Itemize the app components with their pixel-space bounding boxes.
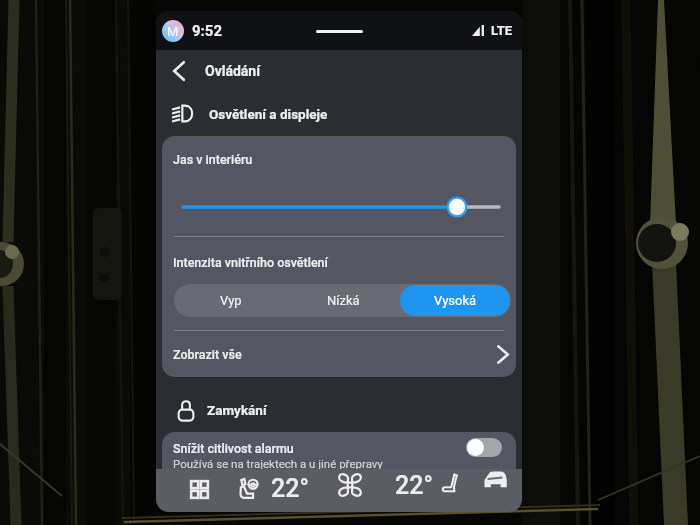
staticText: Jas v interiéru xyxy=(173,152,253,167)
other: Back xyxy=(173,61,185,81)
staticText: 9:52 xyxy=(192,22,223,40)
button[interactable]: Apps xyxy=(182,473,216,507)
staticText: M xyxy=(167,24,179,39)
staticText: 22° xyxy=(271,474,309,503)
staticText: Vyp xyxy=(220,293,242,308)
staticText: Nízká xyxy=(327,293,360,308)
staticText: Osvětlení a displeje xyxy=(209,106,328,122)
button[interactable]: Driver seat heating xyxy=(231,471,265,505)
button[interactable]: Nízká xyxy=(287,284,399,317)
staticText: Snížit citlivost alarmu xyxy=(173,441,294,456)
button[interactable]: Car status xyxy=(478,463,512,497)
staticText: Ovládání xyxy=(205,63,261,79)
button[interactable]: 22° xyxy=(266,471,314,505)
staticText: Vysoká xyxy=(434,293,477,308)
staticText: Zamykání xyxy=(207,402,267,418)
staticText: LTE xyxy=(491,23,513,38)
button[interactable]: Snížit citlivost alarmu xyxy=(162,432,516,490)
staticText: Používá se na trajektech a u jiné přepra… xyxy=(173,457,383,470)
staticText: Intenzita vnitřního osvětlení xyxy=(173,255,328,270)
button[interactable]: Zobrazit vše xyxy=(162,331,516,377)
button[interactable]: Back xyxy=(156,50,522,91)
button[interactable]: Jas v interiéru xyxy=(162,136,516,236)
button[interactable]: Passenger seat heating xyxy=(433,467,467,501)
button[interactable]: Vysoká xyxy=(400,285,510,316)
button[interactable]: 22° xyxy=(390,468,438,502)
button[interactable]: Reduce alarm sensitivity xyxy=(466,438,502,457)
staticText: 22° xyxy=(395,471,433,500)
button[interactable]: Fan speed xyxy=(333,468,367,502)
button[interactable]: Vyp xyxy=(174,284,287,317)
staticText: Zobrazit vše xyxy=(173,347,242,362)
